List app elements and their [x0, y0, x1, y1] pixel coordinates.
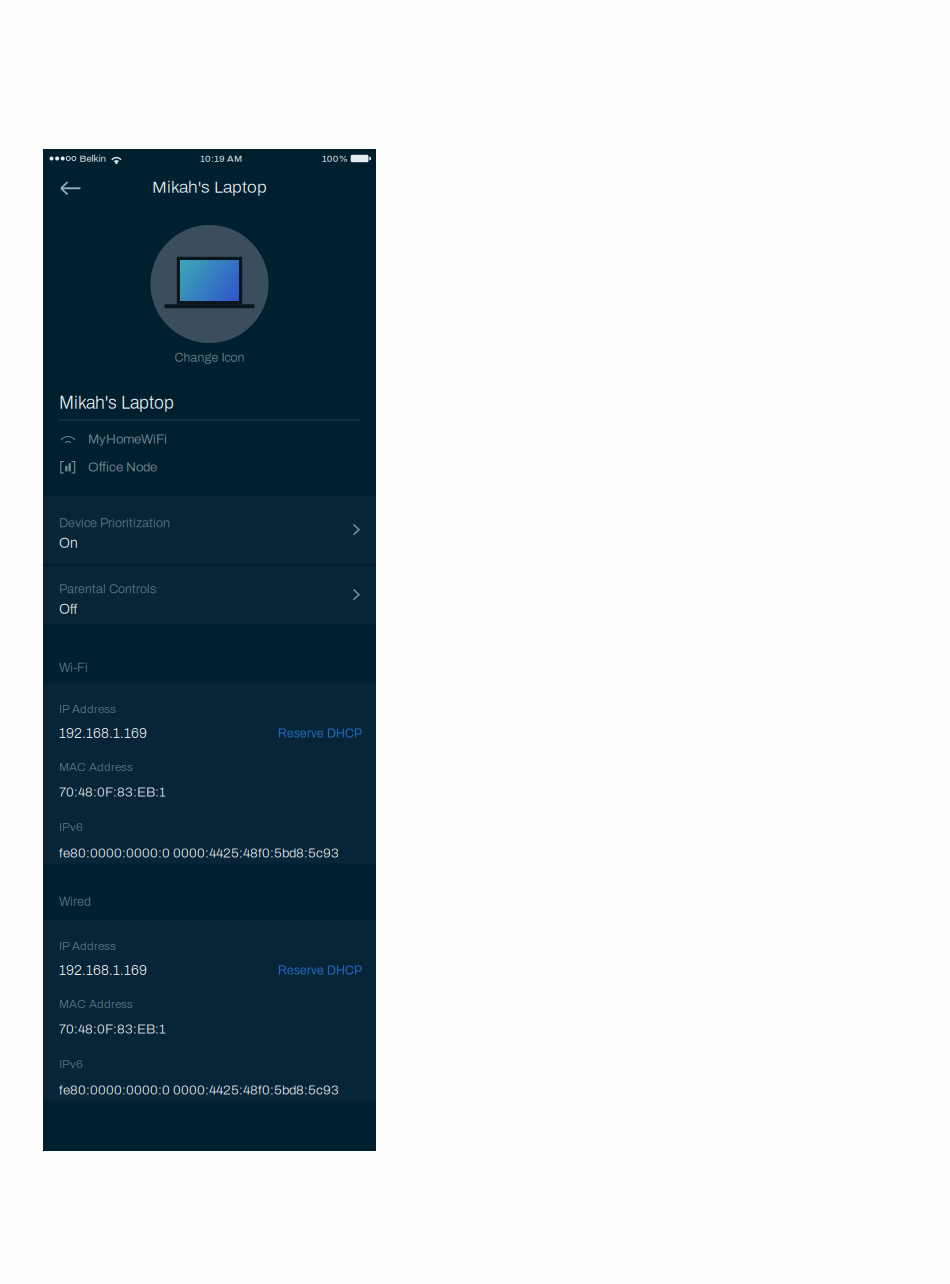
staticText: 192.168.1.169 [59, 726, 147, 741]
staticText: fe80:0000:0000:0 0000:4425:48f0:5bd8:5c9… [59, 846, 339, 860]
staticText: Mikah's Laptop [59, 393, 174, 412]
staticText: Reserve DHCP [278, 727, 362, 740]
button[interactable]: Change Icon [43, 209, 376, 372]
staticText: 192.168.1.169 [59, 963, 147, 978]
staticText: IP Address [59, 940, 116, 952]
staticText: 70:48:0F:83:EB:1 [59, 785, 166, 799]
staticText: Wired [59, 895, 91, 908]
button[interactable]: Parental Controls [43, 566, 376, 623]
staticText: Wi-Fi [59, 661, 88, 674]
button[interactable]: Reserve DHCP [278, 727, 362, 740]
staticText: Device Prioritization [59, 516, 170, 530]
staticText: fe80:0000:0000:0 0000:4425:48f0:5bd8:5c9… [59, 1083, 339, 1097]
staticText: Reserve DHCP [278, 964, 362, 977]
staticText: 100% [322, 153, 348, 164]
staticText: 70:48:0F:83:EB:1 [59, 1022, 166, 1036]
staticText: Parental Controls [59, 582, 156, 596]
staticText: On [59, 535, 78, 551]
staticText: Mikah's Laptop [152, 178, 267, 196]
staticText: MAC Address [59, 998, 133, 1010]
staticText: Off [59, 601, 77, 617]
staticText: Office Node [88, 460, 157, 474]
staticText: MAC Address [59, 761, 133, 773]
staticText: IPv6 [59, 821, 83, 833]
staticText: Belkin [79, 153, 105, 164]
button[interactable]: Back [43, 168, 98, 209]
staticText: MyHomeWiFi [88, 432, 167, 446]
staticText: IPv6 [59, 1058, 83, 1070]
staticText: Change Icon [174, 351, 244, 364]
button[interactable]: Reserve DHCP [278, 964, 362, 977]
staticText: IP Address [59, 703, 116, 715]
button[interactable]: Device Prioritization [43, 496, 376, 563]
staticText: 10:19 AM [200, 153, 242, 164]
